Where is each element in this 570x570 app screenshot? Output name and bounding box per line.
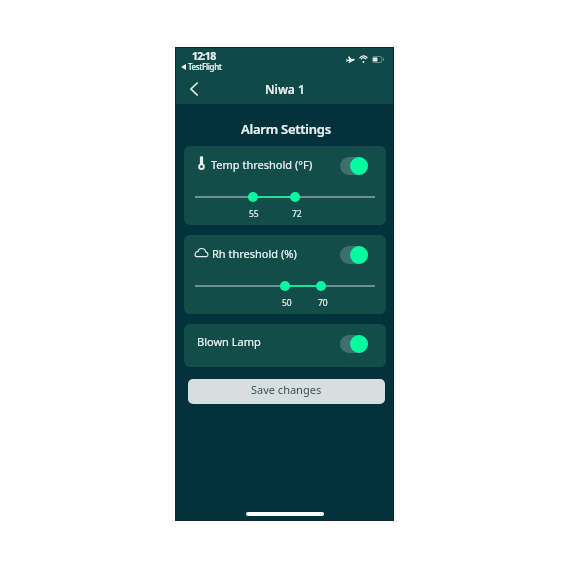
staticText: 12:18 [192,49,216,63]
button[interactable]: Toggle [340,246,368,264]
button[interactable]: Toggle [340,335,368,353]
staticText: Alarm Settings [241,120,331,138]
staticText: Niwa 1 [265,81,305,97]
button[interactable]: Save changes [188,379,385,404]
button[interactable]: Blown Lamp [184,324,386,367]
staticText: 72 [292,208,302,220]
staticText: TestFlight [188,61,222,72]
staticText: Rh threshold (%) [212,246,297,261]
staticText: 70 [318,297,328,309]
button[interactable]: Back [181,76,207,102]
button[interactable]: Threshold range slider [195,280,375,292]
staticText: 50 [282,297,292,309]
staticText: 55 [249,208,259,220]
staticText: Save changes [251,382,322,397]
button[interactable]: Threshold range slider [195,191,375,203]
button[interactable]: Toggle [340,157,368,175]
staticText: Temp threshold (°F) [211,157,313,172]
staticText: Blown Lamp [197,334,261,349]
